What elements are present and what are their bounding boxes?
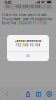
staticText: Click in the home screen to add bbox=[2, 13, 47, 17]
button[interactable]: OK bbox=[7, 52, 49, 61]
staticText: AA bbox=[6, 5, 10, 8]
staticText: 192.168.10.104 bbox=[15, 43, 40, 47]
staticText: 192.168.10.104 bbox=[15, 5, 40, 8]
staticText: 9:41 bbox=[4, 0, 11, 5]
button[interactable]: Tabs bbox=[44, 88, 54, 100]
staticText: Cannot connect to bbox=[14, 39, 41, 43]
button[interactable]: Back bbox=[1, 88, 12, 100]
staticText: Product Name: smart-life/wizard/index bbox=[2, 17, 52, 21]
button[interactable]: Bookmarks bbox=[33, 88, 44, 100]
staticText: OK bbox=[26, 55, 30, 58]
button[interactable]: Share bbox=[23, 88, 33, 100]
staticText: Build Time: 2024.09.11 17:20 bbox=[2, 21, 47, 25]
